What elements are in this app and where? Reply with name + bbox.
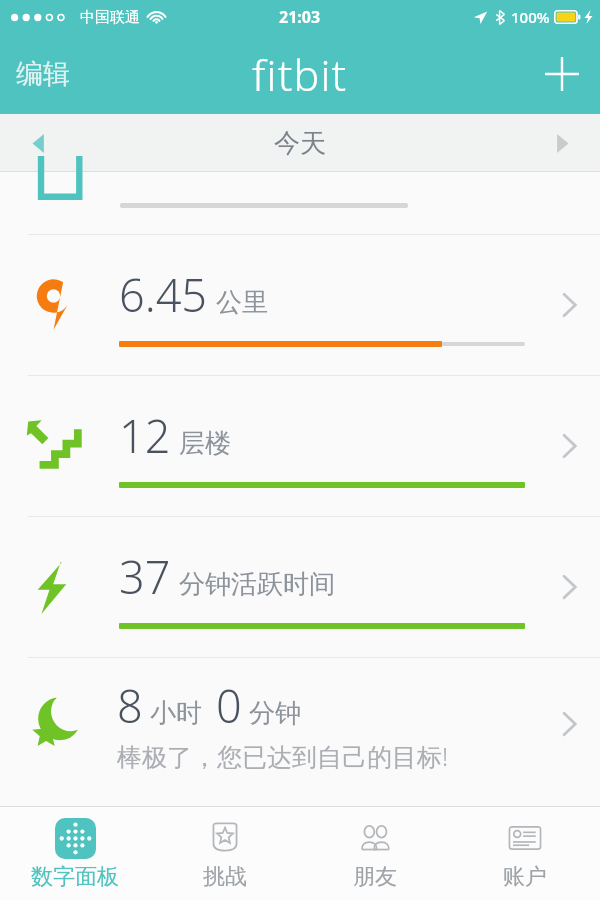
staticText: 小时 <box>150 697 202 730</box>
button[interactable]: 账户 <box>450 807 600 900</box>
button[interactable]: 37 <box>0 517 600 657</box>
staticText: fitbit <box>252 45 348 104</box>
staticText: 6.45 <box>119 264 208 325</box>
button[interactable]: Next day <box>540 121 584 165</box>
button[interactable]: 6.45 <box>0 235 600 375</box>
staticText: 37 <box>119 546 171 607</box>
staticText: 编辑 <box>16 57 70 91</box>
staticText: 分钟 <box>249 697 301 730</box>
button[interactable]: 编辑 <box>0 45 84 103</box>
button[interactable]: 朋友 <box>300 807 450 900</box>
button[interactable]: 8 <box>0 658 600 790</box>
button[interactable]: 挑战 <box>150 807 300 900</box>
staticText: 中国联通 <box>80 8 140 27</box>
staticText: 朋友 <box>353 863 397 891</box>
button[interactable]: Previous day <box>16 121 60 165</box>
staticText: 分钟活跃时间 <box>179 568 335 601</box>
staticText: 21:03 <box>279 6 321 28</box>
staticText: 账户 <box>503 863 547 891</box>
staticText: 棒极了，您已达到自己的目标! <box>117 739 449 773</box>
staticText: 数字面板 <box>31 863 119 891</box>
button[interactable]: 数字面板 <box>0 807 150 900</box>
button[interactable]: 12 <box>0 376 600 516</box>
button[interactable] <box>0 172 600 234</box>
staticText: 层楼 <box>179 427 231 460</box>
staticText: 0 <box>216 675 242 736</box>
staticText: 公里 <box>216 286 268 319</box>
staticText: 8 <box>117 675 143 736</box>
button[interactable]: Add <box>536 48 588 100</box>
staticText: 12 <box>119 405 171 466</box>
staticText: 今天 <box>274 127 326 160</box>
staticText: 100% <box>511 7 550 27</box>
staticText: 挑战 <box>203 863 247 891</box>
